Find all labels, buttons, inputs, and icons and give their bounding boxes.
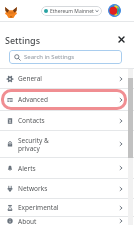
staticText: General xyxy=(18,74,42,83)
staticText: Alerts xyxy=(18,164,36,173)
button[interactable]: Ethereum Mainnet xyxy=(41,6,102,16)
button[interactable]: Contacts xyxy=(0,111,134,130)
staticText: About xyxy=(18,217,37,225)
staticText: Ethereum Mainnet xyxy=(50,8,94,15)
button[interactable]: Networks xyxy=(0,179,134,198)
button[interactable]: Security & privacy xyxy=(0,131,134,157)
staticText: Settings xyxy=(5,34,41,46)
staticText: Contacts xyxy=(18,116,45,125)
button[interactable]: Advanced xyxy=(0,89,134,110)
button[interactable]: Alerts xyxy=(0,158,134,178)
button[interactable]: About xyxy=(0,217,134,225)
staticText: Security & privacy xyxy=(18,136,49,153)
staticText: Experimental xyxy=(18,203,59,212)
staticText: Advanced xyxy=(18,95,48,104)
button[interactable]: General xyxy=(0,69,134,88)
staticText: Networks xyxy=(18,184,48,193)
staticText: Search in Settings xyxy=(24,53,75,61)
button[interactable]: Close xyxy=(115,33,128,46)
button[interactable]: Search in Settings xyxy=(9,50,122,64)
button[interactable]: Account xyxy=(108,4,121,17)
button[interactable]: Experimental xyxy=(0,199,134,216)
